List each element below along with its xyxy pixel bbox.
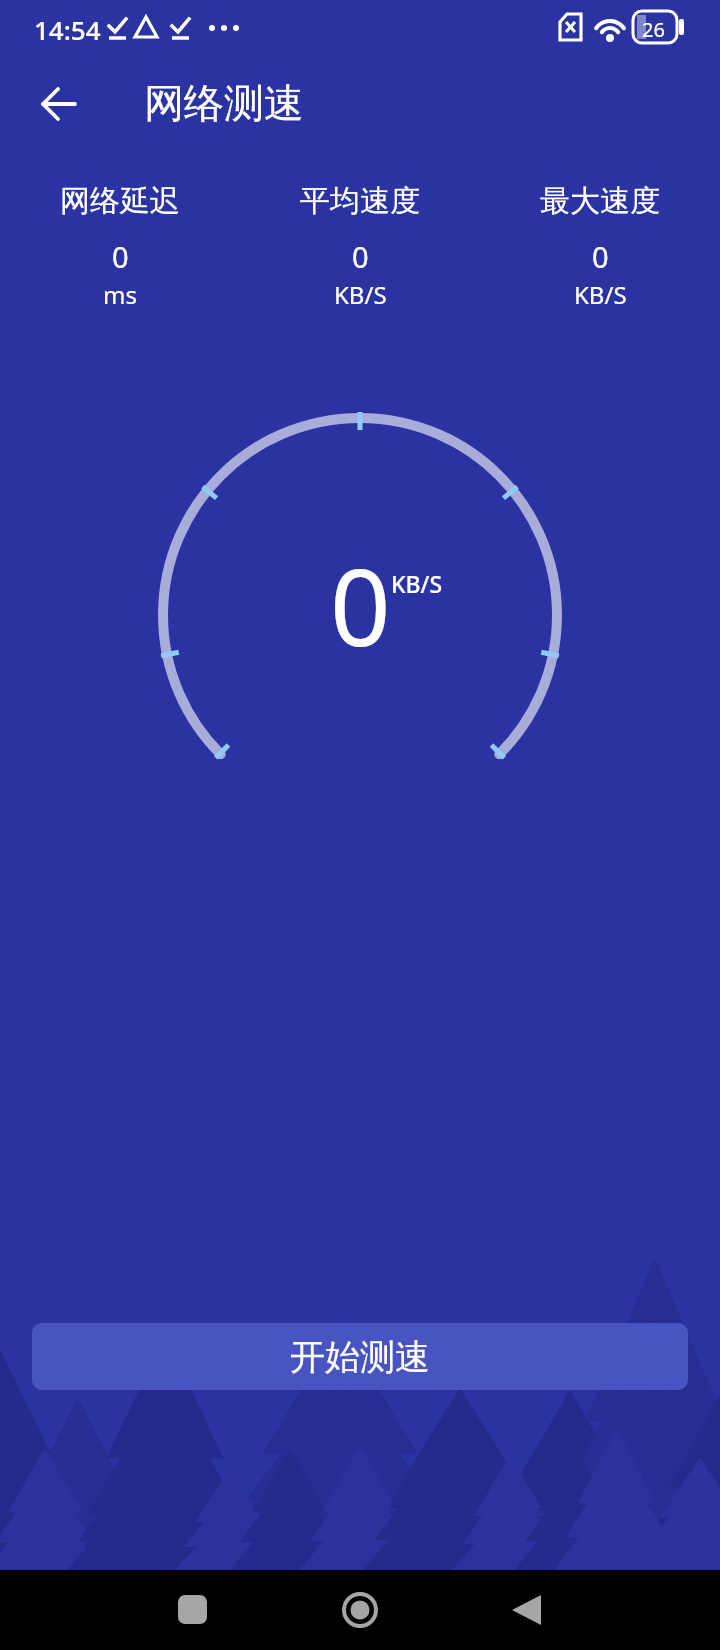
staticText: 26 [642, 16, 665, 43]
button[interactable] [153, 1570, 233, 1650]
staticText: 网络延迟 [60, 182, 180, 220]
staticText: ms [103, 278, 137, 311]
staticText: KB/S [334, 278, 387, 311]
staticText: 0 [330, 533, 391, 673]
staticText: KB/S [574, 278, 627, 311]
button[interactable] [28, 73, 90, 135]
staticText: 0 [112, 237, 129, 276]
staticText: 14:54 [34, 12, 101, 47]
button[interactable] [487, 1570, 567, 1650]
staticText: 网络测速 [144, 78, 304, 128]
staticText: 0 [592, 237, 609, 276]
button[interactable]: 开始测速 [32, 1323, 688, 1390]
staticText: KB/S [391, 568, 443, 599]
button[interactable] [320, 1570, 400, 1650]
staticText: 最大速度 [540, 182, 660, 220]
staticText: 平均速度 [300, 182, 420, 220]
staticText: 开始测速 [290, 1335, 430, 1379]
staticText: 0 [352, 237, 369, 276]
